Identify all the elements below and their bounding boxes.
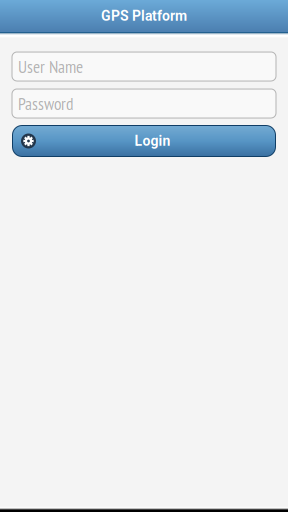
staticText: GPS Platform bbox=[101, 8, 187, 24]
button[interactable]: Password bbox=[12, 89, 276, 118]
button[interactable]: Login bbox=[12, 125, 276, 157]
staticText: Login bbox=[134, 133, 170, 149]
staticText: Password bbox=[18, 92, 74, 115]
button[interactable]: User Name bbox=[12, 52, 276, 81]
staticText: User Name bbox=[18, 55, 83, 78]
